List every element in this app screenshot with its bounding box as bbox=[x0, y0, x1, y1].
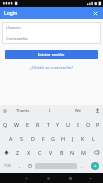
button[interactable]: I bbox=[36, 105, 64, 116]
staticText: P bbox=[96, 121, 100, 128]
button[interactable]: Recents bbox=[59, 173, 81, 183]
button[interactable]: Enter bbox=[87, 159, 103, 173]
staticText: B bbox=[60, 149, 64, 156]
staticText: Login bbox=[4, 10, 18, 17]
staticText: Iniciar sesión bbox=[38, 52, 65, 58]
staticText: W bbox=[14, 121, 20, 128]
button[interactable]: Shift bbox=[0, 145, 13, 159]
button[interactable]: Contraseña bbox=[2, 33, 101, 44]
staticText: H bbox=[61, 135, 65, 142]
staticText: J bbox=[72, 135, 74, 142]
button[interactable]: A bbox=[5, 131, 16, 145]
button[interactable]: We bbox=[64, 105, 92, 116]
button[interactable]: Hide keyboard bbox=[81, 173, 100, 183]
staticText: F bbox=[42, 135, 45, 142]
button[interactable]: Close bbox=[91, 9, 100, 18]
staticText: A bbox=[9, 135, 13, 142]
staticText: C bbox=[38, 149, 42, 156]
button[interactable]: Y bbox=[53, 117, 63, 131]
button[interactable]: X bbox=[23, 145, 34, 159]
staticText: I bbox=[77, 121, 79, 128]
staticText: Y bbox=[56, 121, 60, 128]
button[interactable]: G bbox=[48, 131, 58, 145]
button[interactable]: F bbox=[38, 131, 48, 145]
button[interactable]: P bbox=[93, 117, 103, 131]
button[interactable]: Home bbox=[37, 173, 59, 183]
button[interactable]: Period bbox=[77, 159, 87, 173]
button[interactable]: ¿Olvidó su contraseña? bbox=[0, 65, 103, 70]
button[interactable]: Expand suggestions bbox=[0, 105, 9, 116]
button[interactable]: E bbox=[22, 117, 33, 131]
button[interactable]: J bbox=[68, 131, 78, 145]
staticText: T bbox=[47, 121, 50, 128]
staticText: D bbox=[31, 135, 35, 142]
staticText: . bbox=[81, 163, 83, 169]
button[interactable]: K bbox=[78, 131, 88, 145]
staticText: V bbox=[49, 149, 53, 156]
button[interactable]: Back bbox=[15, 173, 37, 183]
staticText: N bbox=[70, 149, 75, 156]
button[interactable]: Backspace bbox=[89, 145, 103, 159]
button[interactable]: R bbox=[33, 117, 43, 131]
staticText: X bbox=[27, 149, 31, 156]
staticText: K bbox=[81, 135, 85, 142]
staticText: O bbox=[86, 121, 91, 128]
button[interactable]: I bbox=[73, 117, 83, 131]
staticText: We bbox=[75, 108, 81, 113]
button[interactable]: Usuario bbox=[2, 22, 101, 33]
button[interactable]: Iniciar sesión bbox=[5, 50, 98, 59]
button[interactable]: L bbox=[88, 131, 98, 145]
button[interactable]: N bbox=[67, 145, 78, 159]
button[interactable]: Voice input bbox=[92, 105, 103, 116]
button[interactable]: U bbox=[63, 117, 73, 131]
button[interactable]: V bbox=[45, 145, 56, 159]
button[interactable]: C bbox=[34, 145, 45, 159]
staticText: U bbox=[66, 121, 70, 128]
button[interactable]: Z bbox=[13, 145, 23, 159]
button[interactable]: Emoji bbox=[24, 159, 35, 173]
button[interactable]: D bbox=[27, 131, 38, 145]
staticText: Z bbox=[16, 149, 20, 156]
staticText: Contraseña bbox=[6, 36, 28, 41]
staticText: I bbox=[49, 108, 51, 113]
staticText: M bbox=[81, 149, 86, 156]
button[interactable]: Q bbox=[0, 117, 11, 131]
staticText: S bbox=[20, 135, 23, 142]
staticText: L bbox=[92, 135, 95, 142]
button[interactable]: W bbox=[11, 117, 22, 131]
button[interactable]: B bbox=[56, 145, 67, 159]
button[interactable]: T bbox=[43, 117, 53, 131]
button[interactable]: ?123 bbox=[0, 159, 15, 173]
staticText: ?123 bbox=[4, 164, 11, 168]
staticText: R bbox=[36, 121, 40, 128]
button[interactable]: Thanks bbox=[9, 105, 36, 116]
staticText: Usuario bbox=[6, 25, 21, 30]
button[interactable]: Comma bbox=[15, 159, 24, 173]
button[interactable]: S bbox=[16, 131, 27, 145]
staticText: E bbox=[26, 121, 29, 128]
staticText: Thanks bbox=[16, 108, 30, 113]
button[interactable]: O bbox=[83, 117, 93, 131]
staticText: Q bbox=[3, 121, 8, 128]
staticText: , bbox=[19, 163, 21, 169]
button[interactable]: H bbox=[58, 131, 68, 145]
button[interactable]: M bbox=[78, 145, 89, 159]
staticText: ¿Olvidó su contraseña? bbox=[30, 65, 73, 70]
staticText: G bbox=[51, 135, 55, 142]
